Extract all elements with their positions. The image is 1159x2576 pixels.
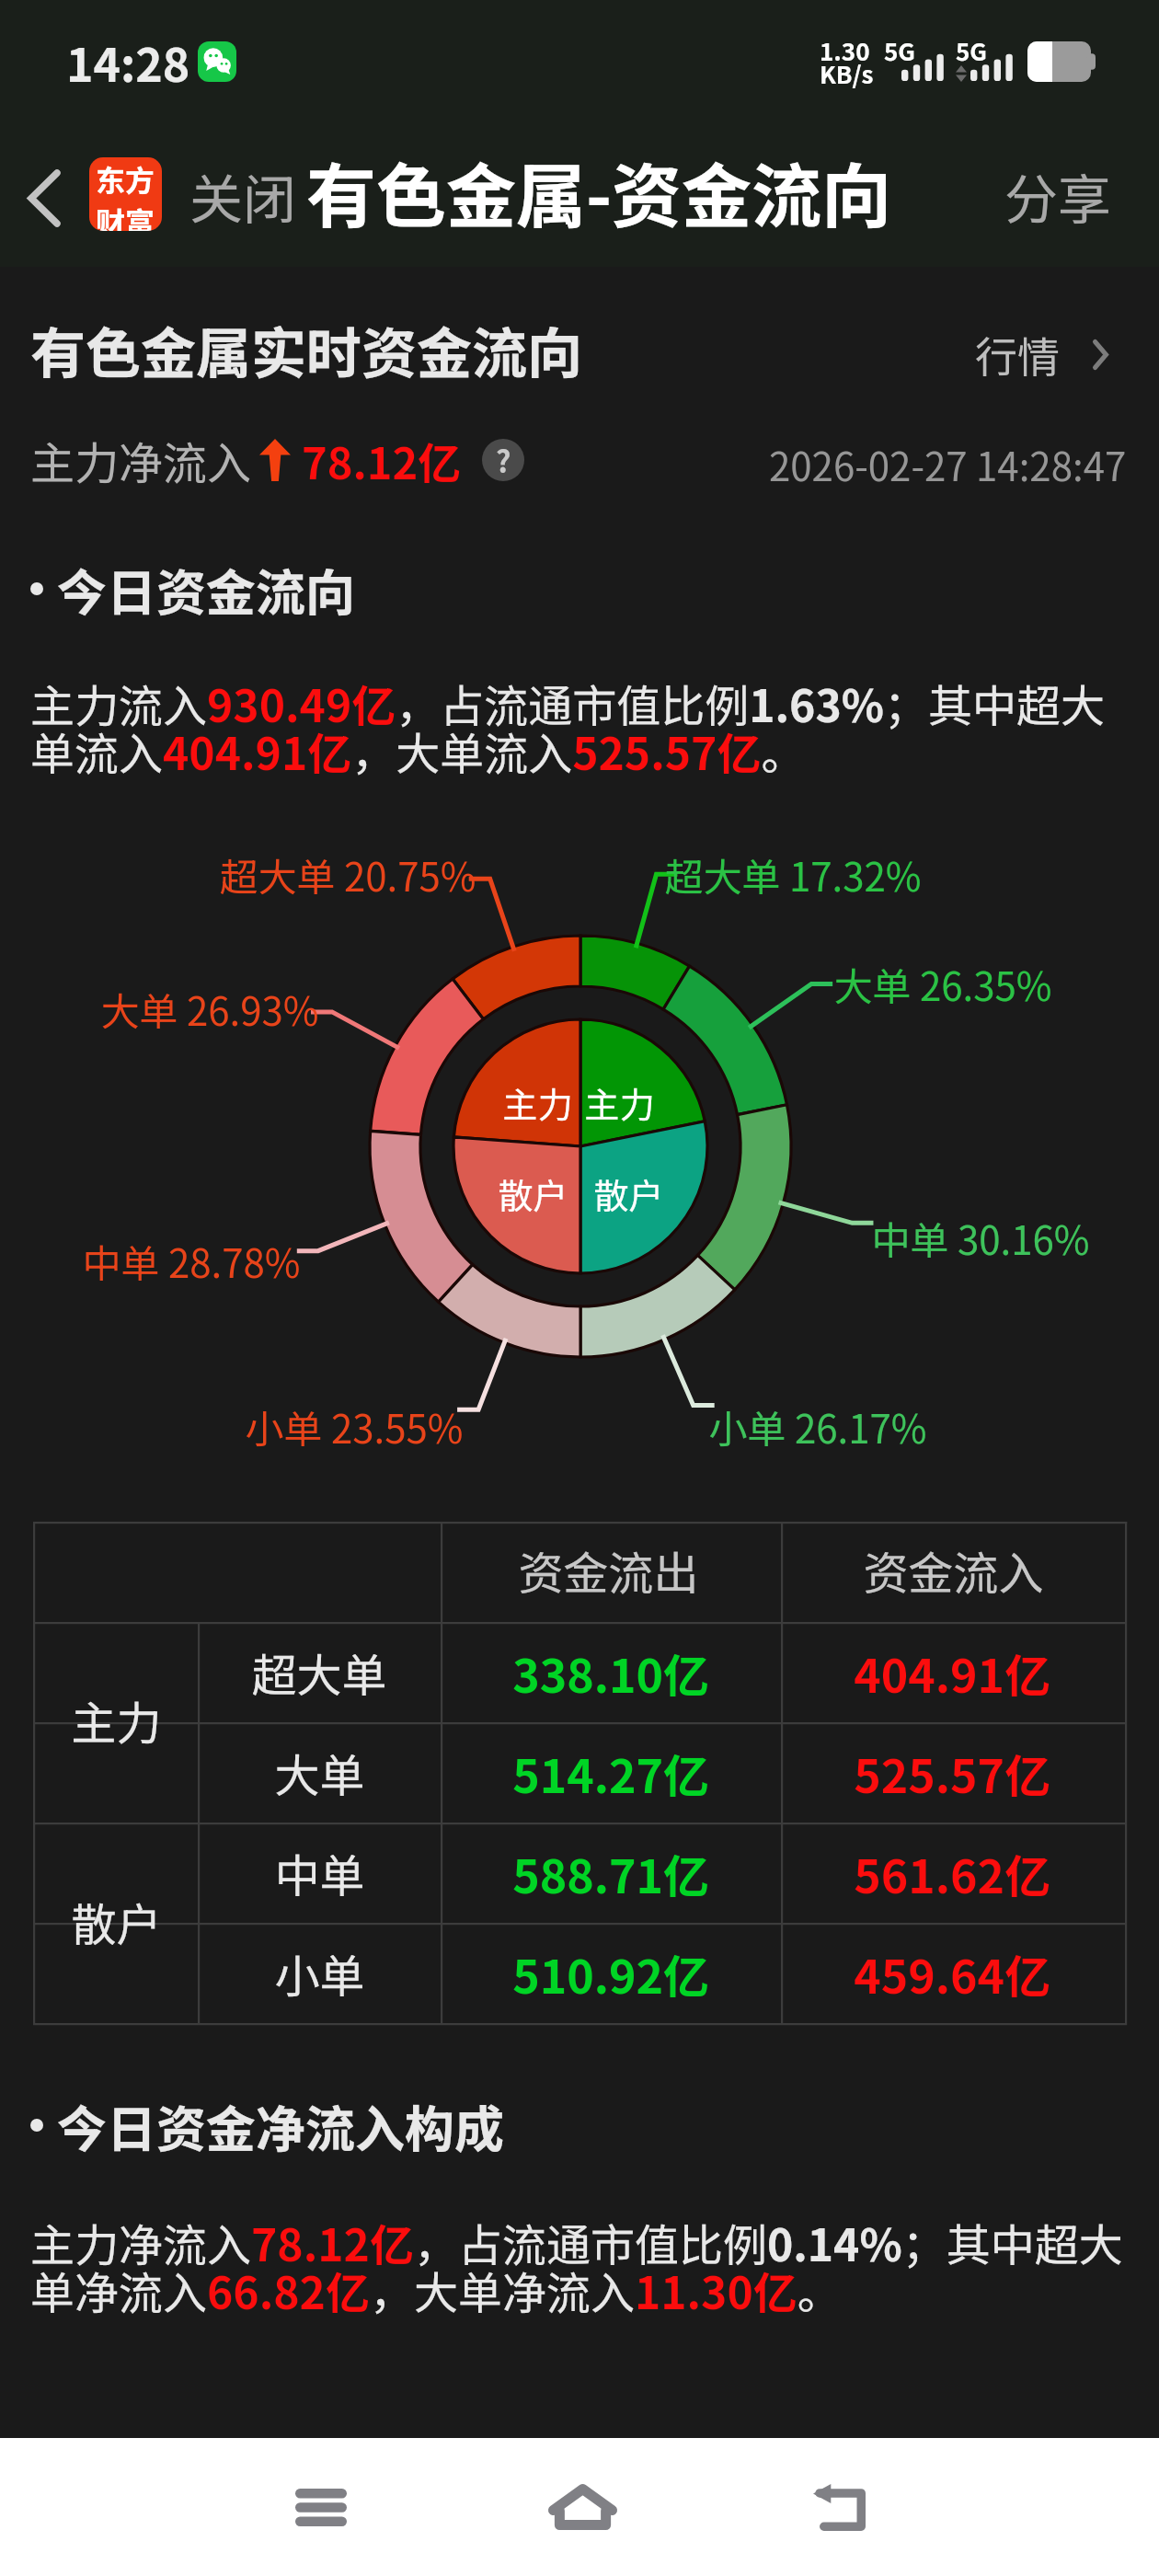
staticText: 5G (884, 33, 915, 68)
staticText: 主力 (71, 1687, 162, 1753)
staticText: 今日资金流向 (57, 553, 355, 625)
button[interactable]: Back (7, 147, 81, 248)
button[interactable]: 关闭 (0, 0, 108, 86)
staticText: 459.64亿 (854, 1940, 1050, 2007)
staticText: 大单 26.35% (833, 956, 1052, 1012)
button[interactable]: Recent apps (247, 2438, 396, 2576)
staticText: 中单 28.78% (82, 1233, 301, 1289)
button[interactable]: East Money (89, 157, 162, 231)
staticText: 大单 26.93% (100, 981, 319, 1037)
staticText: ? (496, 439, 511, 481)
staticText: 主力流入930.49亿，占流通市值比例1.63%；其中超大单流入404.91亿，… (30, 671, 1129, 782)
staticText: KB/s (820, 56, 874, 91)
staticText: 小单 (274, 1940, 365, 2006)
staticText: 588.71亿 (512, 1840, 709, 1906)
staticText: 大单 (274, 1740, 365, 1805)
staticText: 分享 (1004, 157, 1112, 235)
staticText: 行情 (975, 324, 1060, 385)
staticText: 主力净流入 (30, 428, 252, 492)
staticText: 超大单 (251, 1639, 387, 1705)
staticText: 561.62亿 (854, 1840, 1050, 1906)
staticText: 主力 (584, 1077, 655, 1128)
staticText: 今日资金净流入构成 (57, 2089, 504, 2161)
staticText: 资金流入 (863, 1537, 1044, 1603)
staticText: 有色金属-资金流向 (306, 141, 892, 242)
button[interactable]: 行情 (975, 324, 1108, 385)
staticText: 中单 30.16% (871, 1210, 1090, 1266)
staticText: 有色金属实时资金流向 (30, 309, 582, 389)
staticText: 散户 (71, 1889, 162, 1954)
staticText: 小单 23.55% (245, 1398, 464, 1455)
staticText: 5G (956, 33, 987, 68)
staticText: 中单 (274, 1840, 365, 1905)
button[interactable]: Back (764, 2438, 913, 2576)
staticText: 财富 (96, 200, 155, 231)
staticText: 主力净流入78.12亿，占流通市值比例0.14%；其中超大单净流入66.82亿，… (30, 2210, 1129, 2321)
staticText: 超大单 20.75% (219, 846, 476, 903)
staticText: 东方 (96, 157, 155, 200)
staticText: 404.91亿 (854, 1639, 1050, 1706)
staticText: 资金流出 (518, 1537, 699, 1603)
staticText: 2026-02-27 14:28:47 (769, 436, 1127, 492)
staticText: 338.10亿 (512, 1639, 709, 1706)
staticText: 超大单 17.32% (664, 846, 922, 903)
staticText: 小单 26.17% (708, 1398, 927, 1455)
button[interactable]: 分享 (0, 0, 108, 86)
staticText: 78.12亿 (302, 429, 462, 491)
staticText: 关闭 (189, 157, 297, 235)
staticText: 散户 (498, 1168, 568, 1219)
staticText: 525.57亿 (854, 1740, 1050, 1806)
button[interactable]: Help (482, 439, 524, 481)
button[interactable]: Home (508, 2438, 657, 2576)
staticText: 14:28 (66, 29, 190, 95)
staticText: 主力 (502, 1077, 573, 1128)
staticText: 510.92亿 (512, 1940, 709, 2007)
staticText: 1.30 (820, 33, 870, 68)
staticText: 514.27亿 (512, 1740, 709, 1806)
staticText: 散户 (593, 1168, 664, 1219)
